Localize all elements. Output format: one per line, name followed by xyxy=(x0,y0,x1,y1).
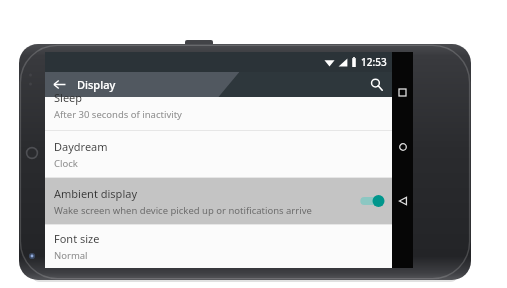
button[interactable]: Font size xyxy=(45,225,392,268)
staticText: 12:53 xyxy=(361,55,387,69)
button[interactable]: Ambient display, on xyxy=(359,191,385,211)
button[interactable]: Navigate up xyxy=(45,72,73,97)
button[interactable]: Search xyxy=(362,72,390,97)
staticText: Daydream xyxy=(54,139,108,154)
button[interactable]: Home xyxy=(392,136,413,157)
button[interactable]: Back xyxy=(392,190,413,211)
button[interactable]: Sleep xyxy=(45,97,392,130)
staticText: Wake screen when device picked up or not… xyxy=(54,204,312,217)
button[interactable]: Ambient display xyxy=(45,178,392,224)
staticText: After 30 seconds of inactivity xyxy=(54,108,182,121)
staticText: Normal xyxy=(54,249,88,262)
button[interactable]: Recent apps xyxy=(392,82,413,103)
staticText: Font size xyxy=(54,231,100,246)
staticText: Clock xyxy=(54,157,78,170)
staticText: Ambient display xyxy=(54,186,138,201)
staticText: Display xyxy=(77,77,116,92)
staticText: Sleep xyxy=(54,90,83,105)
button[interactable]: Daydream xyxy=(45,131,392,177)
